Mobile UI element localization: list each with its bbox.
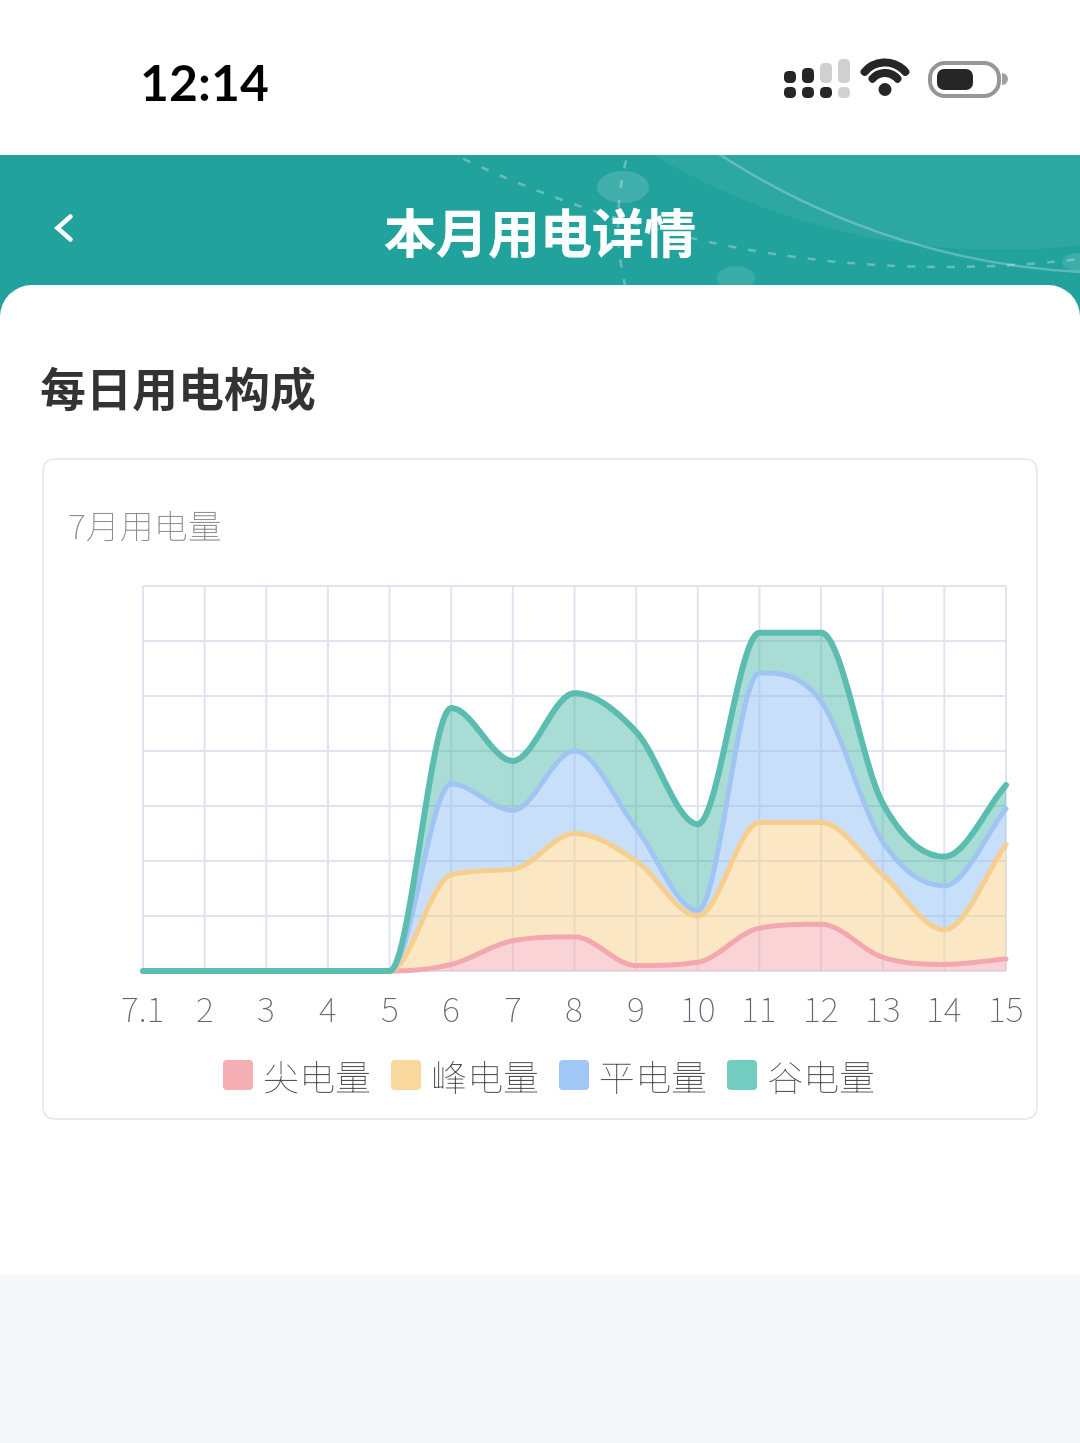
staticText: 10 [680, 983, 716, 1032]
button[interactable]: 7月用电量 [42, 458, 1038, 1120]
staticText: 7 [504, 983, 522, 1032]
staticText: 11 [741, 983, 777, 1032]
staticText: 峰电量 [431, 1049, 540, 1101]
button[interactable]: 峰电量 [391, 1049, 540, 1101]
staticText: 每日用电构成 [40, 353, 316, 420]
staticText: 9 [627, 983, 645, 1032]
staticText: 12:14 [140, 52, 269, 112]
staticText: 6 [442, 983, 460, 1032]
button[interactable]: 谷电量 [727, 1049, 876, 1101]
staticText: 7月用电量 [68, 500, 222, 549]
staticText: 4 [319, 983, 337, 1032]
staticText: 2 [196, 983, 214, 1032]
staticText: 14 [926, 983, 962, 1032]
staticText: 12 [803, 983, 839, 1032]
staticText: 平电量 [599, 1049, 708, 1101]
staticText: 尖电量 [263, 1049, 372, 1101]
staticText: 15 [988, 983, 1024, 1032]
staticText: 7.1 [121, 983, 165, 1032]
staticText: 8 [565, 983, 583, 1032]
staticText: 3 [257, 983, 275, 1032]
staticText: 5 [381, 983, 399, 1032]
button[interactable]: 平电量 [559, 1049, 708, 1101]
button[interactable] [29, 193, 99, 263]
staticText: 本月用电详情 [384, 193, 697, 268]
staticText: 13 [865, 983, 901, 1032]
button[interactable]: 尖电量 [223, 1049, 372, 1101]
staticText: 谷电量 [767, 1049, 876, 1101]
